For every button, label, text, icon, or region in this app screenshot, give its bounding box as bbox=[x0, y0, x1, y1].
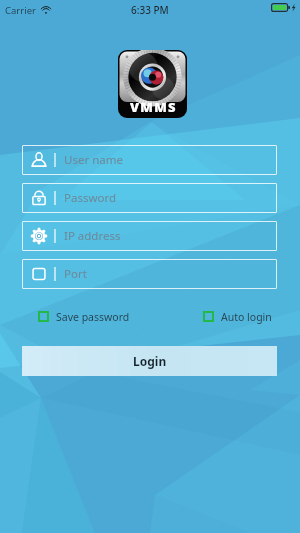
button[interactable]: IP address bbox=[22, 221, 277, 251]
staticText: Auto login bbox=[221, 310, 272, 324]
button[interactable]: Save password bbox=[38, 306, 130, 327]
staticText: Save password bbox=[56, 310, 130, 324]
staticText: 6:33 PM bbox=[131, 3, 169, 17]
button[interactable]: Auto login bbox=[203, 306, 272, 327]
staticText: Password bbox=[64, 190, 117, 206]
staticText: Port bbox=[64, 266, 87, 282]
button[interactable]: Password bbox=[22, 183, 277, 213]
staticText: VMMS bbox=[130, 98, 177, 116]
button[interactable]: Port bbox=[22, 259, 277, 289]
button[interactable]: User name bbox=[22, 145, 277, 175]
button[interactable]: Login bbox=[22, 346, 277, 376]
staticText: Carrier bbox=[5, 4, 36, 17]
staticText: Login bbox=[133, 353, 167, 369]
staticText: User name bbox=[64, 152, 123, 168]
staticText: IP address bbox=[64, 228, 121, 244]
